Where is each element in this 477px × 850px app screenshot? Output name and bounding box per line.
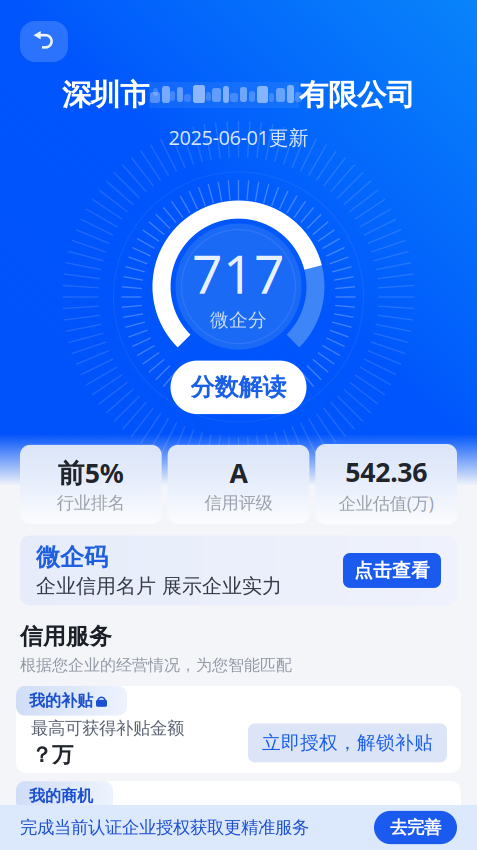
button[interactable]: 返回 <box>20 21 68 62</box>
staticText: ？万 <box>31 742 73 768</box>
button[interactable]: 分数解读 <box>170 361 306 414</box>
staticText: 企业估值(万) <box>339 491 434 514</box>
staticText: 深圳市 <box>62 77 149 113</box>
staticText: 微企码 <box>36 542 108 572</box>
staticText: 2025-06-01更新 <box>168 124 308 151</box>
staticText: 542.36 <box>345 454 427 489</box>
staticText: 去完善 <box>390 817 441 838</box>
staticText: 我的商机 <box>29 786 93 806</box>
staticText: 行业排名 <box>57 492 125 514</box>
staticText: 信用服务 <box>20 622 112 650</box>
staticText: 根据您企业的经营情况，为您智能匹配 <box>20 655 292 675</box>
staticText: 完成当前认证企业授权获取更精准服务 <box>20 817 309 838</box>
staticText: 企业信用名片 展示企业实力 <box>36 574 282 598</box>
staticText: 信用评级 <box>204 492 272 514</box>
staticText: 点击查看 <box>354 559 430 582</box>
staticText: 立即授权，解锁补贴 <box>262 731 433 754</box>
staticText: 717 <box>192 238 285 308</box>
staticText: 分数解读 <box>190 373 286 402</box>
staticText: 最高可获得补贴金额 <box>31 718 184 739</box>
button[interactable]: 立即授权，解锁补贴 <box>248 723 447 762</box>
button[interactable]: 点击查看 <box>343 553 441 588</box>
staticText: 有限公司 <box>299 77 415 113</box>
staticText: 我的补贴 <box>29 691 93 711</box>
button[interactable]: 去完善 <box>374 811 457 844</box>
staticText: A <box>229 455 247 490</box>
staticText: 微企分 <box>210 308 267 331</box>
staticText: 前5% <box>58 455 124 490</box>
